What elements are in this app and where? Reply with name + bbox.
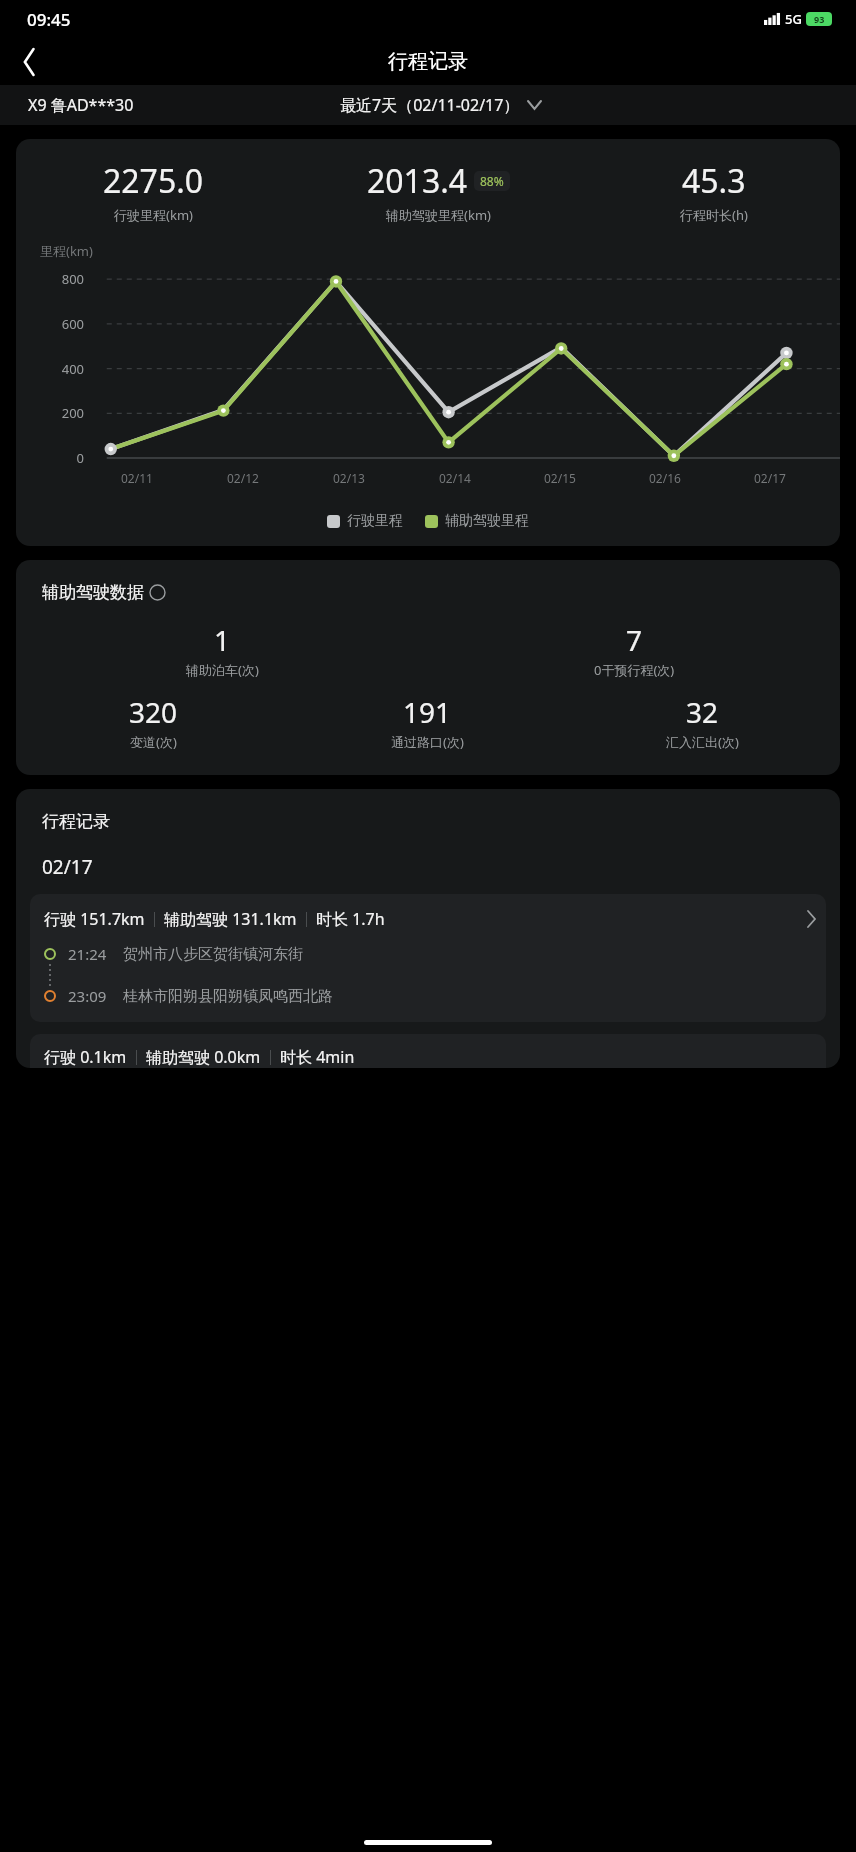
staticText: 辅助驾驶里程 <box>445 512 529 530</box>
staticText: 行驶里程 <box>347 512 403 530</box>
staticText: 变道(次) <box>130 733 177 751</box>
staticText: 191 <box>403 693 452 731</box>
staticText: 2275.0 <box>103 159 204 203</box>
staticText: 辅助驾驶里程(km) <box>386 206 491 224</box>
staticText: 320 <box>129 693 178 731</box>
staticText: 02/17 <box>754 470 786 486</box>
button[interactable]: 最近7天（02/11-02/17） <box>340 94 541 116</box>
staticText: 1 <box>214 621 231 659</box>
staticText: 88% <box>480 173 504 189</box>
staticText: 行驶 151.7km <box>44 908 145 930</box>
staticText: 5G <box>785 10 802 28</box>
staticText: 汇入汇出(次) <box>666 733 739 751</box>
button[interactable]: 辅助驾驶数据 <box>42 582 166 603</box>
staticText: 最近7天（02/11-02/17） <box>340 94 520 116</box>
staticText: 45.3 <box>682 159 746 203</box>
staticText: 02/16 <box>649 470 681 486</box>
button[interactable]: Back <box>10 42 50 82</box>
staticText: 400 <box>38 360 84 378</box>
staticText: 02/14 <box>439 470 471 486</box>
button[interactable]: 行驶 151.7km <box>30 894 826 1022</box>
staticText: 行程时长(h) <box>680 206 748 224</box>
staticText: 通过路口(次) <box>391 733 464 751</box>
staticText: 辅助驾驶 0.0km <box>146 1046 261 1068</box>
staticText: 32 <box>686 693 719 731</box>
staticText: 行驶里程(km) <box>114 206 193 224</box>
staticText: 辅助泊车(次) <box>186 661 259 679</box>
staticText: 2013.4 <box>367 159 468 203</box>
staticText: 辅助驾驶 131.1km <box>164 908 297 930</box>
staticText: 02/13 <box>333 470 365 486</box>
staticText: 里程(km) <box>40 242 93 260</box>
staticText: 行程记录 <box>388 49 468 74</box>
staticText: 800 <box>38 270 84 288</box>
staticText: 贺州市八步区贺街镇河东街 <box>123 945 303 964</box>
staticText: 辅助驾驶数据 <box>42 582 144 603</box>
staticText: 0干预行程(次) <box>594 661 675 679</box>
staticText: 600 <box>38 315 84 333</box>
staticText: 02/15 <box>544 470 576 486</box>
staticText: 02/17 <box>42 854 93 880</box>
staticText: 02/11 <box>121 470 153 486</box>
staticText: X9 鲁AD***30 <box>28 94 134 116</box>
staticText: 行程记录 <box>42 811 110 832</box>
staticText: 时长 4min <box>280 1046 355 1068</box>
button[interactable]: 行驶 0.1km <box>30 1034 826 1068</box>
other: Info <box>149 584 166 601</box>
staticText: 行驶 0.1km <box>44 1046 127 1068</box>
staticText: 时长 1.7h <box>316 908 385 930</box>
staticText: 23:09 <box>68 986 107 1006</box>
staticText: 93 <box>814 13 825 25</box>
staticText: 09:45 <box>27 8 71 31</box>
staticText: 0 <box>38 449 84 467</box>
staticText: 桂林市阳朔县阳朔镇凤鸣西北路 <box>123 987 333 1006</box>
staticText: 7 <box>626 621 643 659</box>
staticText: 02/12 <box>227 470 259 486</box>
staticText: 200 <box>38 404 84 422</box>
staticText: 21:24 <box>68 944 107 964</box>
